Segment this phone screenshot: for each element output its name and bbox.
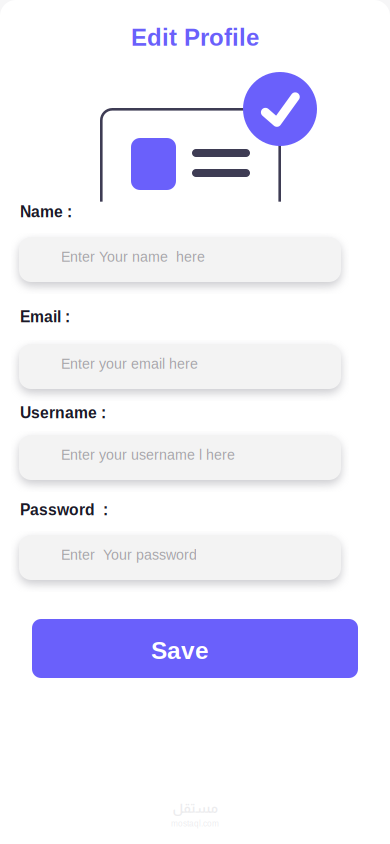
button[interactable]: Enter your email here [19,344,341,389]
button[interactable]: Enter Your name here [19,237,341,282]
staticText: مستقل [172,801,218,816]
staticText: Name : [20,203,72,220]
button[interactable]: Save [32,619,358,678]
staticText: Enter Your password [61,547,197,563]
button[interactable]: Enter Your password [19,535,341,580]
button[interactable]: Enter your username l here [19,435,341,480]
staticText: Username : [20,404,106,421]
staticText: Email : [20,308,70,325]
staticText: Save [151,637,209,664]
staticText: Enter your email here [61,356,198,372]
staticText: mostaql.com [171,819,219,828]
staticText: Edit Profile [131,24,259,51]
staticText: Enter your username l here [61,447,235,463]
staticText: Enter Your name here [61,249,205,265]
staticText: Password : [20,501,108,518]
